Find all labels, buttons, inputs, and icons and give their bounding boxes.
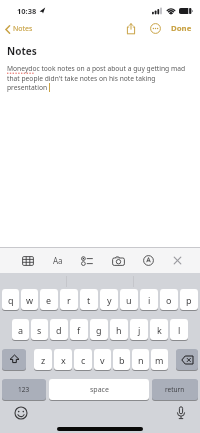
button[interactable]: f <box>70 319 88 340</box>
button[interactable]: Aa <box>53 255 63 266</box>
staticText: Moneydoc took notes on a post about a gu… <box>7 64 186 73</box>
button[interactable]: b <box>113 349 130 370</box>
button[interactable]: e <box>40 289 58 310</box>
button[interactable]: Notes <box>5 24 33 34</box>
staticText: z <box>41 354 46 366</box>
button[interactable]: d <box>50 319 68 340</box>
staticText: v <box>100 354 105 366</box>
staticText: c <box>81 354 86 366</box>
button[interactable] <box>81 256 93 266</box>
button[interactable]: h <box>110 319 128 340</box>
staticText: q <box>8 294 14 306</box>
staticText: x <box>61 354 66 366</box>
staticText: i <box>148 294 151 306</box>
button[interactable] <box>2 349 26 370</box>
staticText: g <box>96 324 102 336</box>
button[interactable] <box>150 23 161 34</box>
button[interactable] <box>22 256 34 266</box>
staticText: r <box>67 294 71 306</box>
button[interactable]: k <box>150 319 168 340</box>
button[interactable] <box>173 256 182 265</box>
button[interactable]: return <box>152 379 198 400</box>
button[interactable]: j <box>130 319 148 340</box>
staticText: m <box>155 354 164 366</box>
staticText: u <box>126 294 132 306</box>
staticText: n <box>138 354 144 366</box>
button[interactable]: n <box>132 349 149 370</box>
staticText: that people didn't take notes on his not… <box>7 74 156 83</box>
button[interactable]: r <box>60 289 78 310</box>
staticText: t <box>87 294 91 306</box>
button[interactable]: i <box>140 289 158 310</box>
button[interactable]: c <box>74 349 92 370</box>
button[interactable]: w <box>21 289 38 310</box>
button[interactable]: y <box>100 289 118 310</box>
button[interactable]: o <box>160 289 178 310</box>
staticText: Aa <box>53 255 63 266</box>
staticText: w <box>26 294 34 306</box>
staticText: k <box>157 324 162 336</box>
staticText: Done <box>171 23 192 34</box>
button[interactable]: x <box>54 349 72 370</box>
button[interactable] <box>112 256 125 266</box>
staticText: Notes <box>13 24 33 34</box>
button[interactable] <box>126 23 136 35</box>
staticText: b <box>119 354 125 366</box>
button[interactable]: space <box>49 379 149 400</box>
button[interactable]: z <box>34 349 52 370</box>
button[interactable]: u <box>120 289 138 310</box>
staticText: o <box>166 294 172 306</box>
button[interactable] <box>14 406 28 420</box>
staticText: p <box>186 294 192 306</box>
staticText: j <box>138 324 141 336</box>
button[interactable]: v <box>94 349 111 370</box>
staticText: h <box>116 324 122 336</box>
button[interactable]: Done <box>171 23 192 34</box>
button[interactable] <box>176 349 198 370</box>
staticText: y <box>107 294 112 306</box>
staticText: Notes <box>7 44 37 58</box>
button[interactable] <box>176 406 186 420</box>
staticText: e <box>46 294 52 306</box>
staticText: 123 <box>18 385 30 394</box>
staticText: return <box>165 385 185 394</box>
button[interactable]: p <box>180 289 198 310</box>
staticText: 10:38 <box>17 6 37 16</box>
staticText: d <box>56 324 62 336</box>
button[interactable] <box>143 255 154 266</box>
button[interactable]: s <box>31 319 48 340</box>
button[interactable]: m <box>151 349 168 370</box>
staticText: f <box>77 324 81 336</box>
staticText: presentation <box>7 83 48 92</box>
button[interactable]: t <box>80 289 98 310</box>
button[interactable]: g <box>90 319 108 340</box>
staticText: a <box>18 324 24 336</box>
button[interactable]: 123 <box>2 379 46 400</box>
staticText: space <box>90 385 109 395</box>
button[interactable]: l <box>170 319 188 340</box>
staticText: l <box>178 324 181 336</box>
button[interactable]: q <box>2 289 19 310</box>
button[interactable]: a <box>12 319 29 340</box>
staticText: s <box>37 324 42 336</box>
